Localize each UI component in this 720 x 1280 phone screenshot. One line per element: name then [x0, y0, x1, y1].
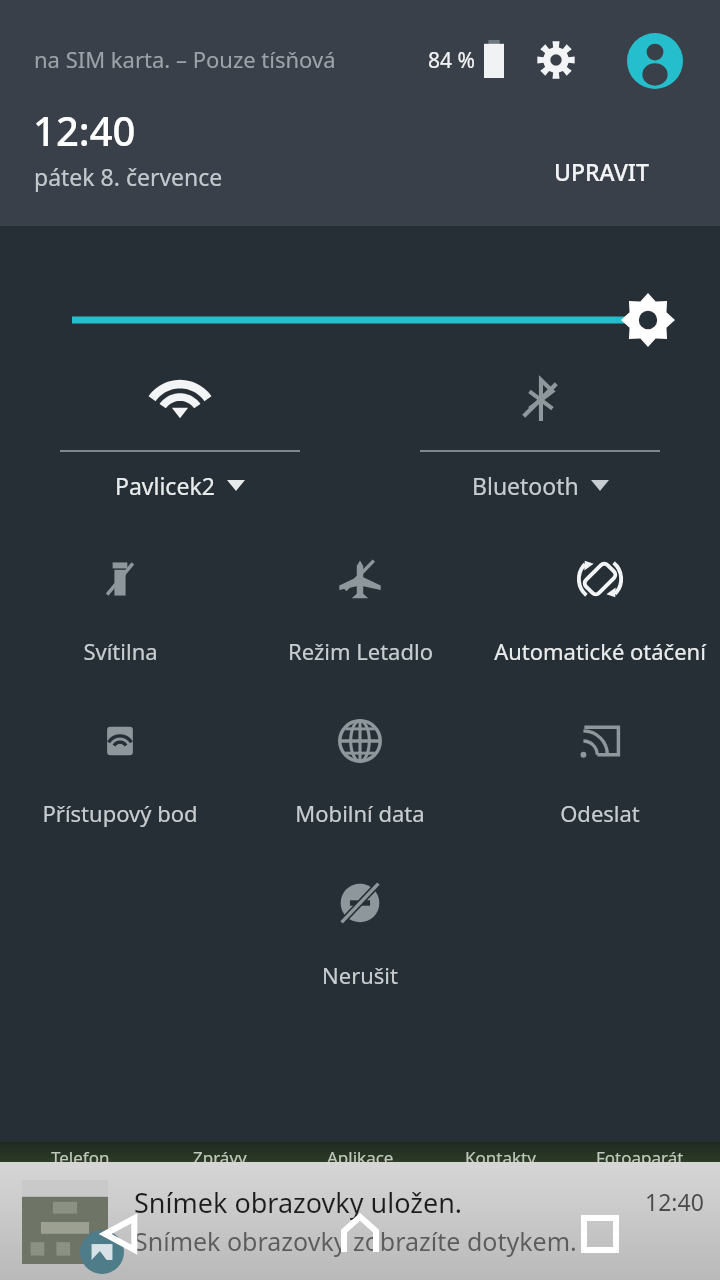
button[interactable]: Nerušit: [240, 854, 480, 1016]
staticText: Mobilní data: [295, 798, 425, 828]
staticText: pátek 8. července: [34, 161, 223, 192]
button[interactable]: Automatické otáčení: [480, 530, 720, 692]
staticText: Snímek obrazovky zobrazíte dotykem.: [134, 1224, 577, 1258]
staticText: Snímek obrazovky uložen.: [134, 1184, 463, 1221]
button[interactable]: Back: [0, 1188, 240, 1280]
button[interactable]: Settings: [526, 30, 586, 90]
button[interactable]: Přístupový bod: [0, 692, 240, 854]
staticText: na SIM karta. – Pouze tísňová: [34, 44, 404, 74]
button[interactable]: Režim Letadlo: [240, 530, 480, 692]
staticText: Svítilna: [83, 636, 158, 666]
staticText: Kontakty: [465, 1146, 536, 1169]
staticText: Zprávy: [193, 1146, 247, 1169]
staticText: Aplikace: [327, 1146, 394, 1169]
staticText: Přístupový bod: [42, 798, 198, 828]
staticText: UPRAVIT: [554, 156, 649, 187]
staticText: Bluetooth: [472, 470, 579, 501]
button[interactable]: Odeslat: [480, 692, 720, 854]
staticText: Automatické otáčení: [494, 636, 706, 666]
button[interactable]: Pavlicek2: [0, 356, 360, 516]
staticText: Telefon: [51, 1146, 110, 1169]
button[interactable]: Brightness: [0, 226, 720, 356]
staticText: 12:40: [33, 103, 136, 157]
button[interactable]: Recent apps: [480, 1188, 720, 1280]
staticText: Odeslat: [560, 798, 640, 828]
staticText: Režim Letadlo: [288, 636, 433, 666]
button[interactable]: Snímek obrazovky uložen.: [0, 1162, 720, 1280]
button[interactable]: Mobilní data: [240, 692, 480, 854]
button[interactable]: User: [626, 32, 684, 90]
staticText: 84 %: [428, 46, 475, 75]
staticText: Nerušit: [322, 960, 398, 990]
staticText: 12:40: [645, 1186, 704, 1217]
staticText: Pavlicek2: [115, 470, 215, 501]
button[interactable]: Home: [240, 1188, 480, 1280]
staticText: Fotoaparát: [596, 1146, 684, 1169]
button[interactable]: Bluetooth: [360, 356, 720, 516]
button[interactable]: UPRAVIT: [536, 146, 667, 197]
button[interactable]: Svítilna: [0, 530, 240, 692]
